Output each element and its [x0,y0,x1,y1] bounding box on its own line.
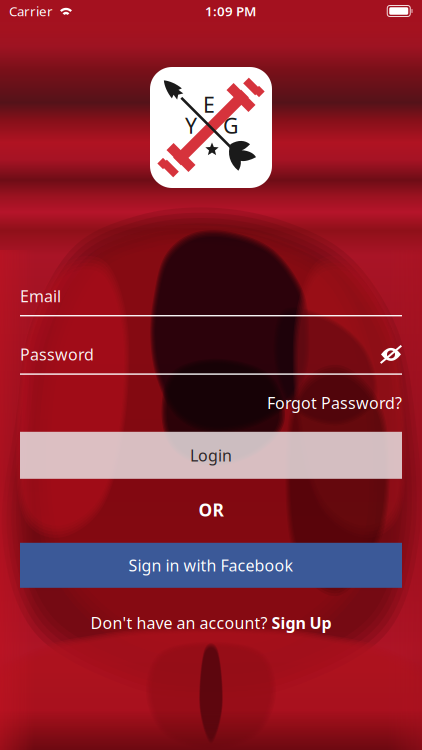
staticText: Carrier [9,2,53,20]
staticText: Sign in with Facebook [128,555,293,576]
staticText: 1:09 PM [205,2,256,20]
staticText: Y [185,111,197,140]
staticText: Sign Up [271,612,331,633]
button[interactable]: Sign in with Facebook [20,543,402,588]
staticText: E [203,90,215,119]
staticText: Forgot Password? [267,392,402,413]
button[interactable]: Forgot Password? [267,392,402,414]
staticText: OR [198,498,223,521]
staticText: Password [20,344,94,365]
staticText: Don't have an account? [90,612,271,633]
staticText: G [223,111,239,140]
staticText: Email [20,285,61,307]
staticText: Login [190,445,232,466]
button[interactable]: Don't have an account? [90,611,331,635]
button[interactable]: Login [20,432,402,479]
button[interactable]: Show password [380,344,402,364]
